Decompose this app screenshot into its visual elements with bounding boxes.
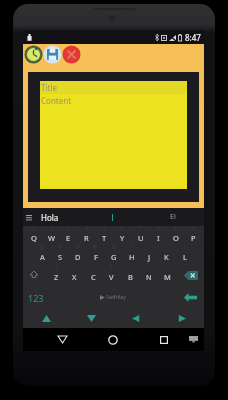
button[interactable]: 0 — [186, 226, 201, 245]
button[interactable]: * — [124, 245, 139, 264]
button[interactable]: 6 — [115, 226, 130, 245]
staticText: L — [183, 252, 187, 262]
button[interactable]: Enter — [176, 286, 204, 309]
button[interactable]: Recents — [153, 328, 174, 351]
staticText: X — [72, 272, 77, 282]
staticText: 4 — [85, 225, 88, 232]
button[interactable]: : — [123, 264, 138, 286]
staticText: & — [112, 244, 116, 251]
button[interactable]: Title — [40, 81, 187, 94]
staticText: El — [170, 212, 176, 222]
staticText: ( — [184, 244, 186, 251]
button[interactable]: 5 — [97, 226, 112, 245]
staticText: I — [157, 233, 160, 243]
button[interactable]: Hide keyboard — [183, 328, 203, 351]
staticText: H — [129, 252, 135, 262]
staticText: / — [167, 263, 169, 270]
staticText: M — [164, 272, 171, 282]
button[interactable]: 1 — [26, 226, 41, 245]
staticText: 6 — [121, 225, 124, 232]
staticText: G — [111, 252, 117, 262]
staticText: R — [84, 233, 89, 243]
staticText: B — [128, 272, 133, 282]
button[interactable]: Backspace — [178, 264, 204, 286]
staticText: # — [59, 244, 63, 251]
staticText: Y — [120, 233, 125, 243]
staticText: S — [58, 252, 63, 262]
staticText: % — [93, 244, 98, 251]
button[interactable]: Left — [114, 309, 159, 328]
staticText: P — [191, 233, 196, 243]
button[interactable]: 9 — [168, 226, 183, 245]
button[interactable]: ? — [104, 264, 119, 286]
button[interactable]: 8 — [151, 226, 166, 245]
staticText: T — [102, 233, 107, 243]
button[interactable]: / — [160, 264, 175, 286]
staticText: 7 — [139, 225, 142, 232]
staticText: Q — [31, 233, 37, 243]
button[interactable]: Space — [49, 286, 176, 309]
staticText: V — [109, 272, 114, 282]
staticText: A — [40, 252, 45, 262]
button[interactable]: Delete — [62, 45, 81, 64]
button[interactable]: 3 — [61, 226, 76, 245]
button[interactable]: 7 — [133, 226, 148, 245]
button[interactable]: Right — [159, 309, 204, 328]
staticText: ! — [56, 263, 58, 270]
button[interactable]: Down — [69, 309, 114, 328]
staticText: Title — [41, 82, 57, 93]
staticText: 2 — [50, 225, 53, 232]
staticText: J — [148, 252, 151, 262]
staticText: U — [138, 233, 144, 243]
staticText: W — [48, 233, 55, 243]
staticText: SwiftKey — [106, 294, 126, 301]
button[interactable]: ; — [141, 264, 156, 286]
button[interactable]: ( — [177, 245, 192, 264]
staticText: F — [94, 252, 98, 262]
button[interactable]: " — [67, 264, 82, 286]
staticText: C — [91, 272, 96, 282]
staticText: Z — [54, 272, 59, 282]
button[interactable]: Back — [52, 328, 73, 351]
button[interactable]: $ — [70, 245, 85, 264]
staticText: 8 — [157, 225, 160, 232]
button[interactable]: ' — [86, 264, 101, 286]
button[interactable]: & — [106, 245, 121, 264]
staticText: 5 — [103, 225, 106, 232]
button[interactable]: % — [88, 245, 103, 264]
button[interactable]: Home — [102, 328, 123, 351]
button[interactable]: + — [159, 245, 174, 264]
staticText: O — [173, 233, 179, 243]
button[interactable]: - — [142, 245, 157, 264]
button[interactable]: 2 — [44, 226, 59, 245]
button[interactable]: ! — [49, 264, 64, 286]
button[interactable]: # — [53, 245, 68, 264]
staticText: 1 — [32, 225, 35, 232]
button[interactable]: Set reminder — [24, 45, 43, 64]
staticText: 123 — [28, 292, 44, 304]
staticText: 0 — [192, 225, 195, 232]
staticText: D — [75, 252, 81, 262]
staticText: E — [66, 233, 71, 243]
staticText: Hola — [41, 212, 59, 223]
button[interactable]: 4 — [79, 226, 94, 245]
staticText: Content — [41, 95, 72, 106]
button[interactable]: Content — [40, 94, 187, 107]
staticText: K — [164, 252, 169, 262]
staticText: @ — [40, 244, 45, 251]
button[interactable]: Shift — [23, 264, 45, 286]
staticText: N — [146, 272, 152, 282]
button[interactable]: Up — [23, 309, 69, 328]
button[interactable]: Numbers — [23, 286, 49, 309]
staticText: $ — [76, 244, 79, 251]
staticText: 9 — [174, 225, 177, 232]
button[interactable]: @ — [35, 245, 50, 264]
staticText: * — [130, 244, 133, 251]
button[interactable]: Save — [43, 45, 62, 64]
